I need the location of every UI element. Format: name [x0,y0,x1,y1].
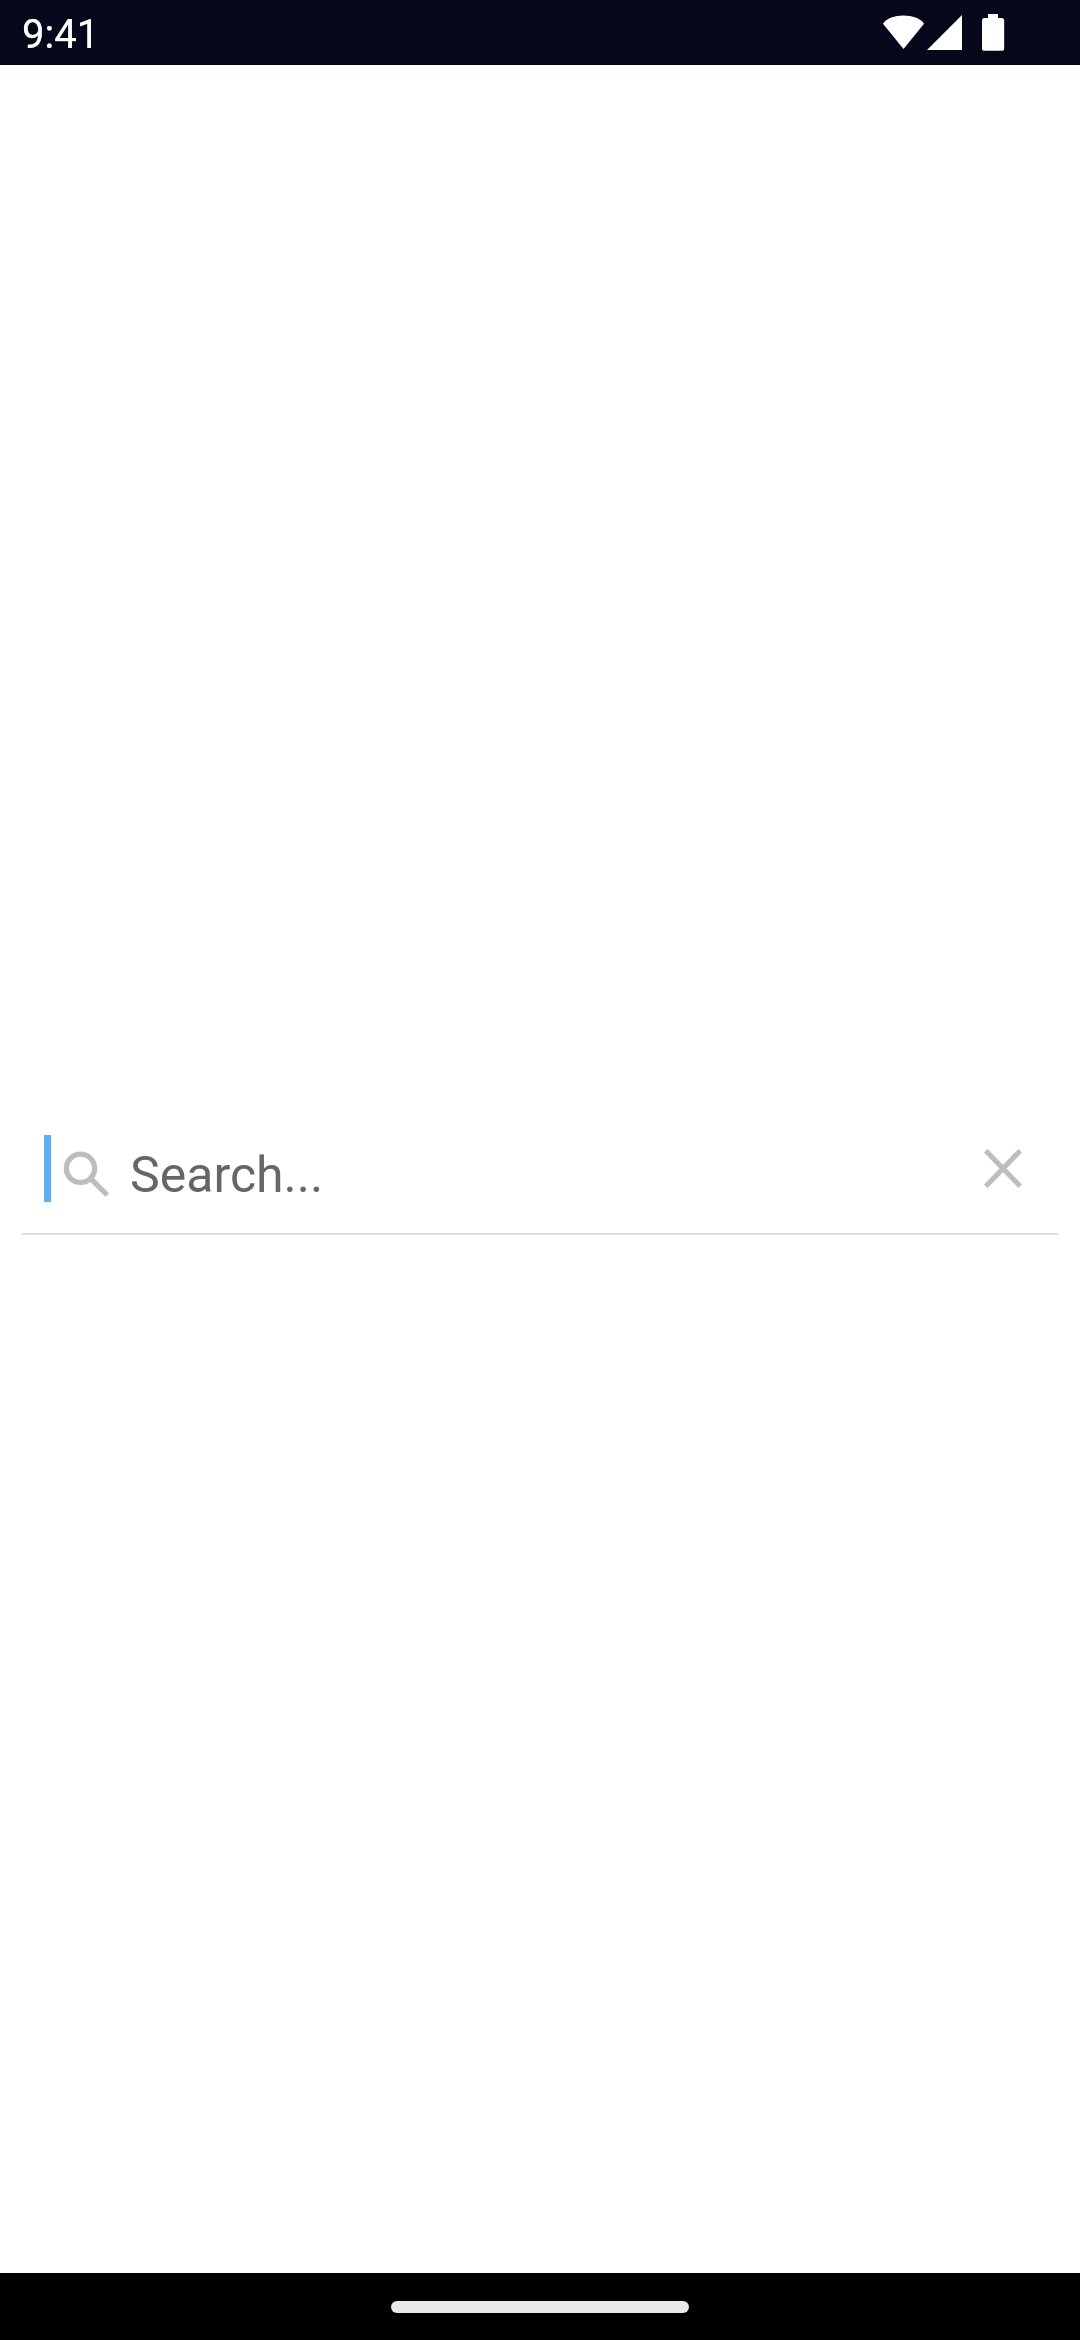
staticText: 9:41 [22,11,100,58]
staticText: Search... [130,1146,324,1205]
button[interactable]: Search... [0,1126,1080,1241]
button[interactable]: Clear search [963,1128,1043,1208]
